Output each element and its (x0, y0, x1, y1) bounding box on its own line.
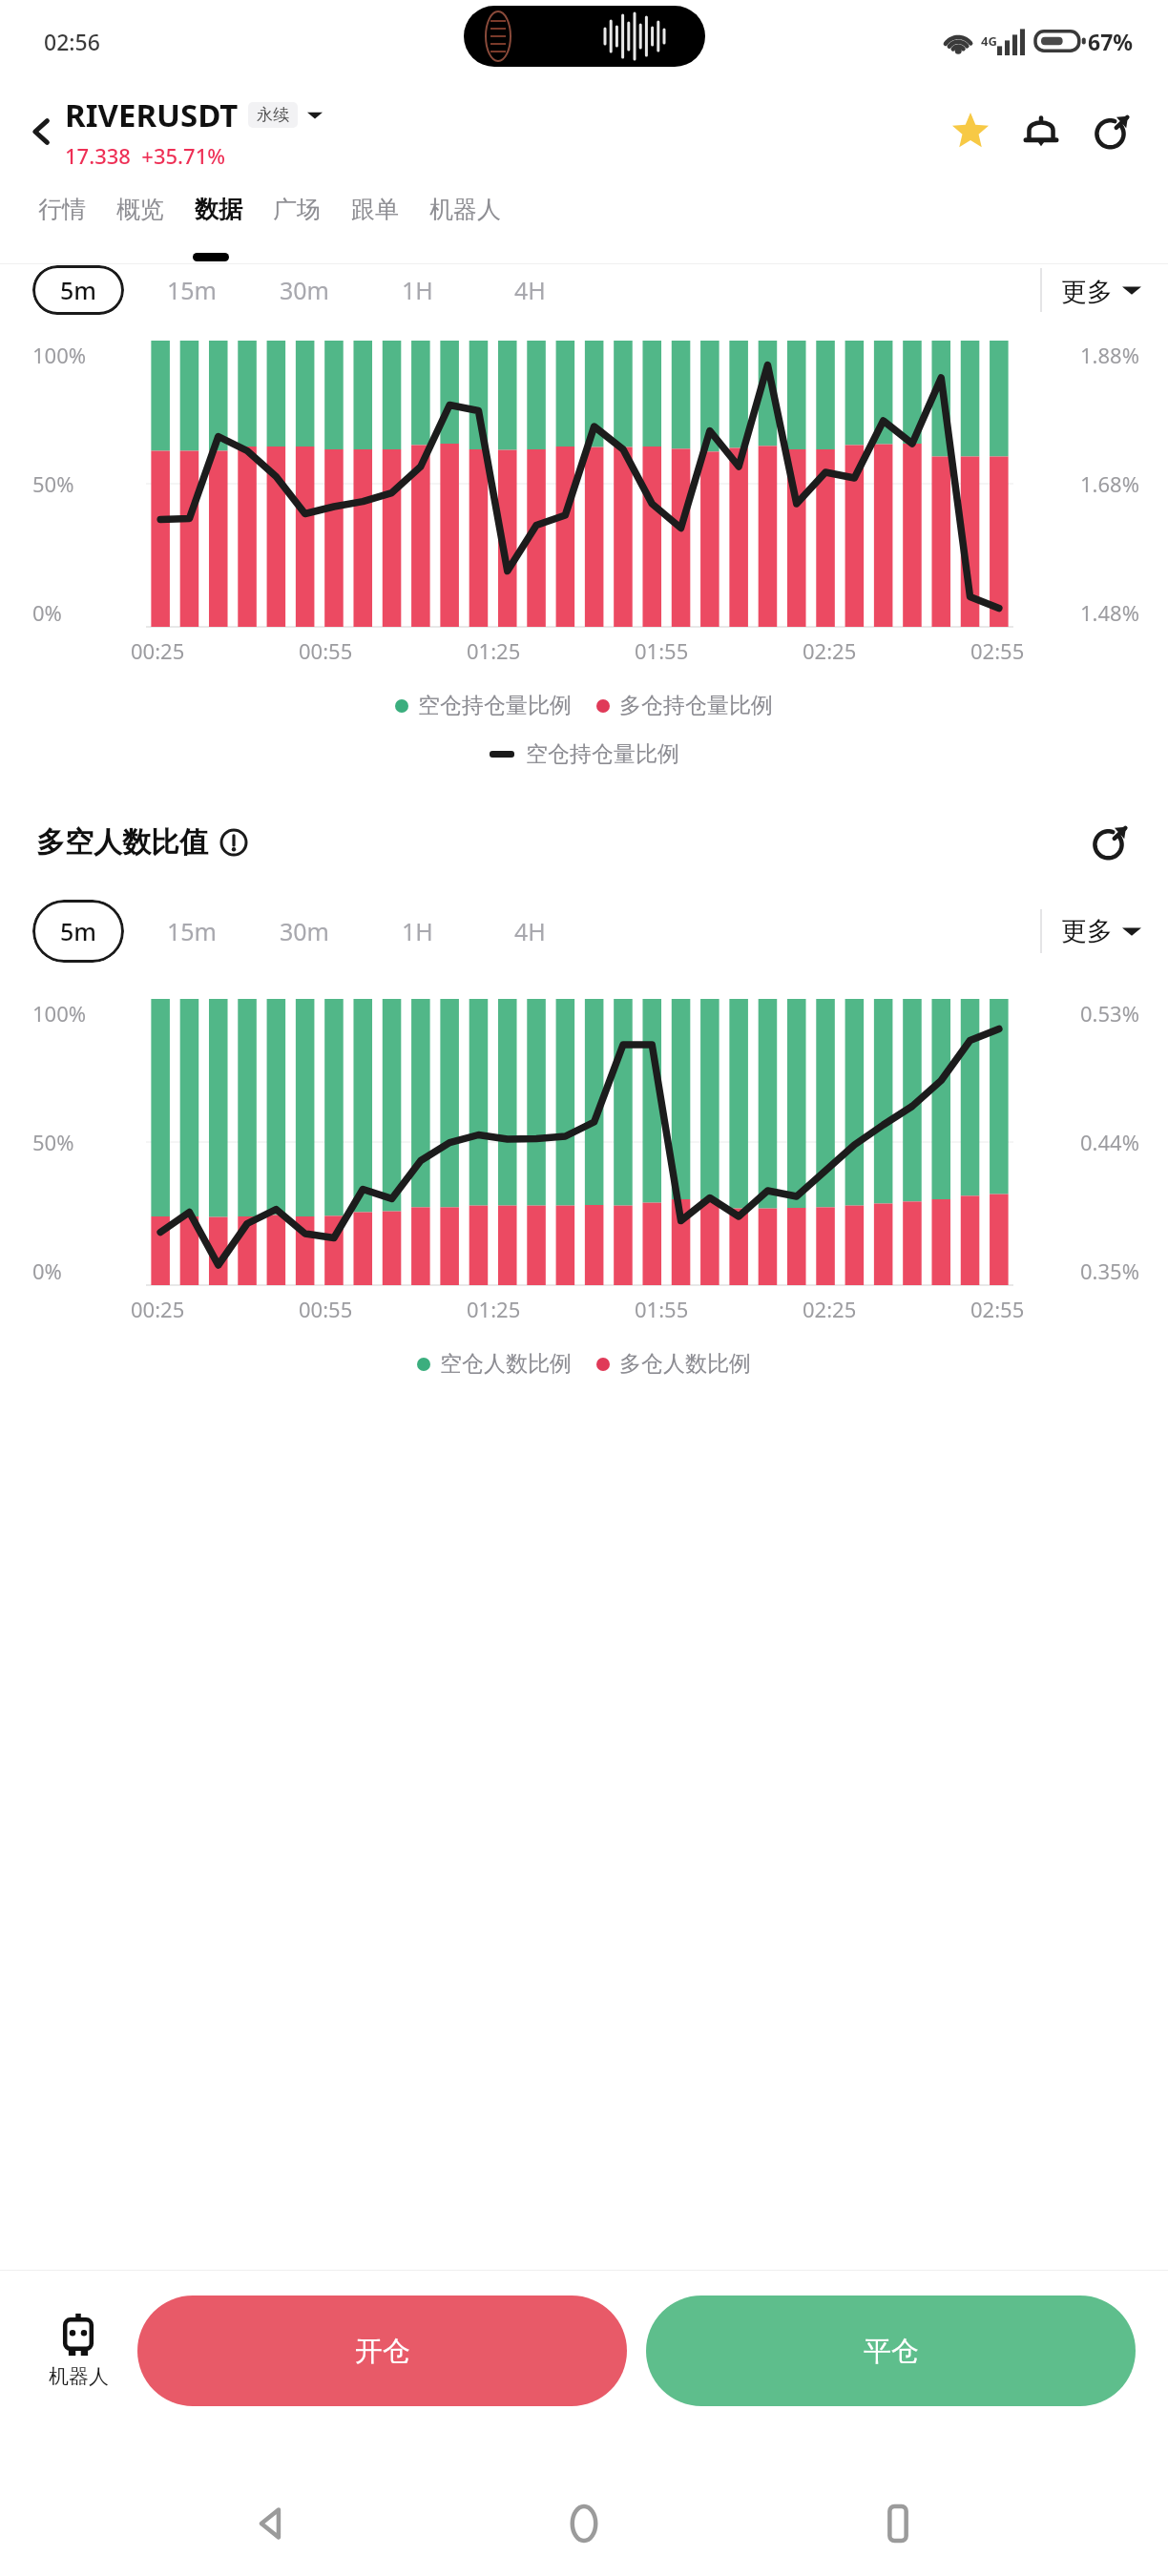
button[interactable]: 4H (473, 264, 586, 316)
staticText: 02:25 (803, 636, 857, 665)
staticText: 100% (32, 999, 87, 1028)
button[interactable]: 1H (361, 264, 473, 316)
staticText: 1H (402, 274, 433, 306)
button[interactable]: 概览 (101, 181, 179, 238)
staticText: 00:55 (299, 1295, 353, 1323)
button[interactable]: 4H (473, 897, 586, 966)
staticText: 02:25 (803, 1295, 857, 1323)
staticText: 空仓持仓量比例 (526, 740, 679, 768)
staticText: 15m (167, 915, 217, 947)
staticText: 01:55 (635, 1295, 689, 1323)
button[interactable]: 15m (136, 897, 248, 966)
staticText: 01:55 (635, 636, 689, 665)
button[interactable]: 30m (248, 264, 361, 316)
staticText: 更多 (1061, 915, 1113, 947)
staticText: 50% (32, 469, 74, 498)
staticText: RIVERUSDT (65, 93, 239, 136)
button[interactable]: 15m (136, 264, 248, 316)
staticText: 15m (167, 274, 217, 306)
button[interactable]: 广场 (258, 181, 336, 238)
staticText: 67% (1088, 27, 1134, 56)
staticText: 空仓持仓量比例 (418, 692, 572, 719)
button[interactable]: Recents (855, 2481, 941, 2566)
staticText: 更多 (1061, 276, 1113, 304)
button[interactable]: 5m (21, 897, 136, 966)
staticText: 30m (280, 915, 329, 947)
staticText: 00:25 (131, 636, 185, 665)
button[interactable]: Back (228, 2481, 314, 2566)
button[interactable]: 开仓 (137, 2296, 627, 2406)
staticText: 00:55 (299, 636, 353, 665)
staticText: 0% (32, 598, 62, 627)
button[interactable]: 更多 (1042, 264, 1147, 316)
staticText: 4H (514, 915, 546, 947)
button[interactable]: 数据 (179, 181, 258, 238)
button[interactable]: Home (541, 2481, 627, 2566)
staticText: 4H (514, 274, 546, 306)
staticText: 5m (60, 274, 96, 306)
staticText: 5m (60, 915, 96, 947)
button[interactable]: 更多 (1042, 904, 1147, 959)
staticText: 0.53% (1080, 999, 1139, 1028)
staticText: 概览 (116, 195, 164, 224)
staticText: 平仓 (864, 2334, 919, 2369)
staticText: 多空人数比值 (36, 824, 208, 861)
staticText: 行情 (38, 195, 86, 224)
button[interactable]: Share (1080, 813, 1139, 872)
staticText: 100% (32, 341, 87, 369)
staticText: 30m (280, 274, 329, 306)
staticText: 17.338 +35.71% (65, 141, 225, 170)
staticText: 开仓 (355, 2334, 410, 2369)
button[interactable]: Back (15, 105, 69, 158)
button[interactable]: 1H (361, 897, 473, 966)
staticText: 00:25 (131, 1295, 185, 1323)
button[interactable]: 5m (21, 264, 136, 316)
staticText: 02:55 (970, 1295, 1025, 1323)
staticText: 空仓人数比例 (440, 1350, 572, 1378)
staticText: 数据 (195, 195, 242, 224)
button[interactable]: Alerts (1012, 102, 1071, 161)
staticText: 1.68% (1080, 469, 1139, 498)
button[interactable]: 平仓 (646, 2296, 1136, 2406)
staticText: 1.88% (1080, 341, 1139, 369)
button[interactable]: 行情 (23, 181, 101, 238)
staticText: 多仓人数比例 (619, 1350, 751, 1378)
staticText: 永续 (257, 105, 289, 125)
staticText: 跟单 (351, 195, 399, 224)
staticText: 机器人 (429, 195, 501, 224)
staticText: 0.35% (1080, 1257, 1139, 1285)
button[interactable]: 机器人 (414, 181, 516, 238)
staticText: 01:25 (467, 1295, 521, 1323)
staticText: 机器人 (49, 2364, 109, 2389)
staticText: 1.48% (1080, 598, 1139, 627)
staticText: 02:56 (44, 27, 100, 56)
staticText: 0% (32, 1257, 62, 1285)
staticText: 多仓持仓量比例 (619, 692, 773, 719)
button[interactable]: Share (1082, 102, 1141, 161)
button[interactable]: Favorite (941, 102, 1000, 161)
staticText: 01:25 (467, 636, 521, 665)
button[interactable]: 跟单 (336, 181, 414, 238)
button[interactable]: 机器人 (32, 2313, 124, 2389)
staticText: 4G (981, 32, 997, 50)
staticText: 0.44% (1080, 1128, 1139, 1156)
staticText: 02:55 (970, 636, 1025, 665)
staticText: 广场 (273, 195, 321, 224)
button[interactable]: 30m (248, 897, 361, 966)
staticText: 50% (32, 1128, 74, 1156)
staticText: 1H (402, 915, 433, 947)
